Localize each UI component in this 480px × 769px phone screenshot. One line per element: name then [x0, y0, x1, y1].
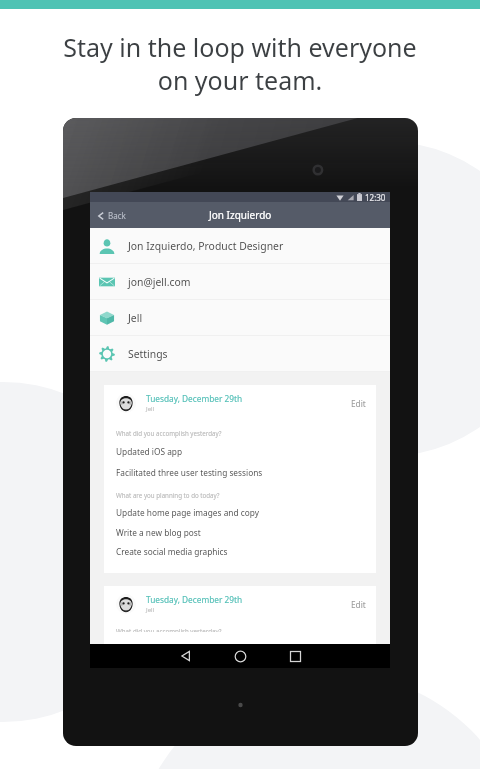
- staticText: Tuesday, December 29th: [146, 393, 243, 404]
- staticText: Update home page images and copy: [116, 507, 259, 518]
- staticText: 12:30: [365, 192, 386, 202]
- staticText: Jon Izquierdo: [209, 208, 272, 222]
- staticText: What are you planning to do today?: [116, 491, 220, 499]
- staticText: Jell: [128, 311, 143, 325]
- button[interactable]: Jon Izquierdo, Product Designer: [90, 228, 390, 263]
- staticText: Stay in the loop with everyone on your t…: [63, 30, 417, 97]
- button[interactable]: Jell: [90, 300, 390, 335]
- button[interactable]: Settings: [90, 336, 390, 371]
- staticText: Facilitated three user testing sessions: [116, 467, 263, 478]
- staticText: Updated iOS app: [116, 446, 183, 457]
- button[interactable]: Back: [158, 644, 213, 668]
- staticText: What did you accomplish yesterday?: [116, 429, 222, 437]
- staticText: What did you accomplish yesterday?: [116, 627, 222, 632]
- staticText: Tuesday, December 29th: [146, 594, 243, 605]
- staticText: Create social media graphics: [116, 546, 228, 557]
- button[interactable]: Home: [213, 644, 268, 668]
- staticText: jon@jell.com: [128, 275, 191, 289]
- staticText: Jell: [146, 606, 155, 614]
- staticText: Back: [108, 210, 126, 221]
- staticText: Jon Izquierdo, Product Designer: [128, 239, 284, 253]
- button[interactable]: Edit: [351, 398, 366, 409]
- staticText: Settings: [128, 347, 168, 361]
- staticText: Write a new blog post: [116, 527, 201, 538]
- button[interactable]: Recents: [268, 644, 323, 668]
- button[interactable]: Edit: [351, 599, 366, 610]
- button[interactable]: Back: [96, 210, 126, 221]
- staticText: Jell: [146, 405, 155, 413]
- button[interactable]: jon@jell.com: [90, 264, 390, 299]
